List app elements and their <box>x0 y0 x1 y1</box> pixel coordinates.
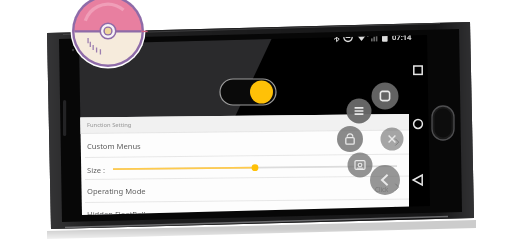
button[interactable]: FloatBall settings promo <box>0 0 512 250</box>
